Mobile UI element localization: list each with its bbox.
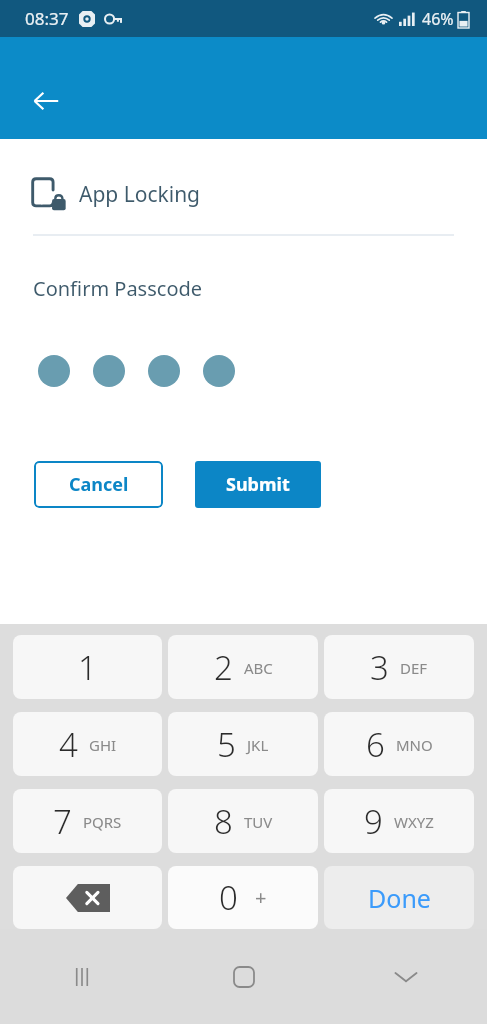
button[interactable]: 7	[13, 789, 162, 853]
staticText: 6	[366, 722, 385, 767]
staticText: 3	[370, 645, 389, 690]
button[interactable]: 9	[324, 789, 474, 853]
button[interactable]: 5	[168, 712, 318, 776]
staticText: Cancel	[69, 472, 129, 497]
staticText: +	[255, 884, 267, 911]
staticText: 4	[59, 722, 78, 767]
staticText: MNO	[396, 735, 433, 755]
button[interactable]: Backspace	[13, 866, 162, 929]
button[interactable]: 2	[168, 635, 318, 699]
button[interactable]: Recents	[0, 929, 163, 1024]
staticText: GHI	[89, 735, 117, 755]
button[interactable]: Back	[22, 77, 70, 125]
staticText: 7	[53, 799, 72, 844]
staticText: WXYZ	[394, 812, 434, 832]
staticText: TUV	[244, 812, 273, 832]
staticText: 5	[217, 722, 236, 767]
button[interactable]: 1	[13, 635, 162, 699]
button[interactable]: 3	[324, 635, 474, 699]
button[interactable]: Done	[324, 866, 474, 929]
staticText: 08:37	[25, 7, 69, 30]
staticText: 9	[364, 799, 383, 844]
button[interactable]: 4	[13, 712, 162, 776]
staticText: 1	[78, 645, 97, 690]
staticText: 46%	[422, 8, 454, 30]
staticText: ABC	[244, 658, 273, 678]
staticText: App Locking	[79, 180, 201, 209]
staticText: Submit	[226, 472, 290, 497]
button[interactable]: 8	[168, 789, 318, 853]
staticText: Done	[368, 881, 431, 915]
button[interactable]: Cancel	[34, 461, 163, 508]
button[interactable]: 0	[168, 866, 318, 929]
button[interactable]: Hide keyboard	[325, 929, 487, 1024]
staticText: JKL	[247, 735, 269, 755]
staticText: 0	[219, 875, 238, 920]
button[interactable]: Submit	[195, 461, 321, 508]
staticText: 8	[214, 799, 233, 844]
staticText: DEF	[400, 658, 428, 678]
staticText: 2	[214, 645, 233, 690]
staticText: PQRS	[83, 812, 122, 832]
button[interactable]: Home	[163, 929, 325, 1024]
staticText: Confirm Passcode	[33, 275, 203, 302]
button[interactable]: 6	[324, 712, 474, 776]
